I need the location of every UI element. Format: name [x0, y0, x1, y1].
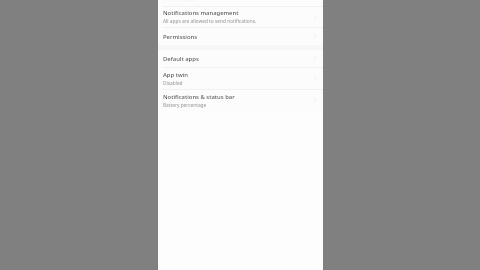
staticText: Notifications management: [163, 9, 239, 17]
button[interactable]: Permissions: [158, 28, 323, 45]
staticText: All apps are allowed to send notificatio…: [163, 18, 257, 25]
staticText: Notifications & status bar: [163, 93, 235, 101]
staticText: App twin: [163, 71, 188, 79]
staticText: Battery percentage: [163, 102, 207, 109]
button[interactable]: App twin: [158, 68, 323, 89]
staticText: Default apps: [163, 55, 199, 63]
staticText: Permissions: [163, 33, 198, 41]
button[interactable]: Notifications management: [158, 7, 323, 27]
button[interactable]: Default apps: [158, 50, 323, 67]
button[interactable]: Notifications & status bar: [158, 90, 323, 111]
staticText: Disabled: [163, 80, 183, 87]
